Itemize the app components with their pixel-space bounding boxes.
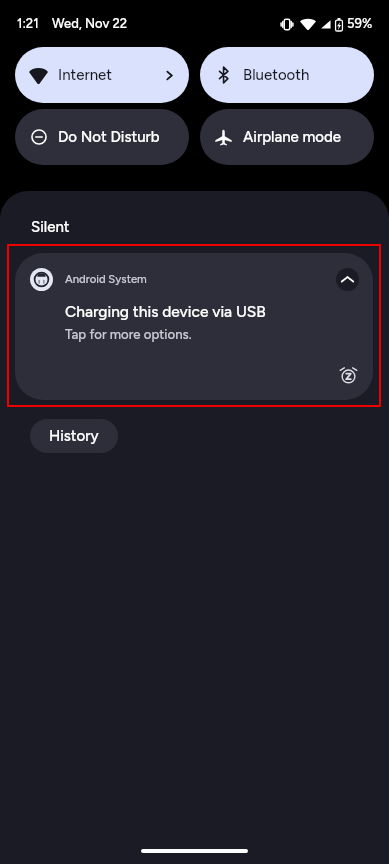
button[interactable]: Airplane mode <box>200 109 374 165</box>
staticText: 1:21 <box>17 16 39 32</box>
staticText: Internet <box>58 66 113 84</box>
staticText: Charging this device via USB <box>65 302 266 321</box>
staticText: Silent <box>31 218 70 236</box>
button[interactable]: Bluetooth <box>200 47 374 103</box>
button[interactable]: Android System <box>15 253 373 400</box>
button[interactable]: Do Not Disturb <box>15 109 189 165</box>
staticText: 59% <box>347 16 373 32</box>
button[interactable]: Collapse notification <box>336 268 359 291</box>
button[interactable]: Internet <box>15 47 189 103</box>
staticText: Android System <box>65 272 147 286</box>
button[interactable]: History <box>30 419 118 453</box>
staticText: History <box>49 427 99 445</box>
staticText: Do Not Disturb <box>58 128 160 146</box>
staticText: Airplane mode <box>243 128 342 146</box>
staticText: Bluetooth <box>243 66 310 84</box>
staticText: Tap for more options. <box>65 326 192 342</box>
button[interactable]: Snooze <box>336 362 360 386</box>
staticText: Wed, Nov 22 <box>52 16 128 32</box>
